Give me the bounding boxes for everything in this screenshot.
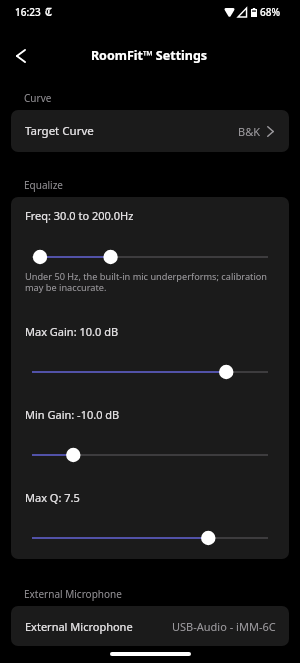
- staticText: USB-Audio - iMM-6C: [172, 619, 276, 634]
- staticText: External Microphone: [24, 587, 122, 601]
- staticText: External Microphone: [25, 619, 133, 634]
- staticText: Under 50 Hz, the built-in mic underperfo…: [25, 270, 277, 294]
- staticText: Min Gain: -10.0 dB: [25, 407, 120, 422]
- button[interactable]: External Microphone: [11, 606, 289, 646]
- button[interactable]: Slider: [11, 363, 289, 381]
- staticText: 𝔗: [45, 3, 53, 21]
- staticText: 68%: [260, 5, 280, 19]
- button[interactable]: Slider: [11, 446, 289, 464]
- staticText: 16:23: [15, 5, 41, 19]
- staticText: B&K: [238, 124, 261, 139]
- staticText: Equalize: [24, 178, 63, 192]
- staticText: Freq: 30.0 to 200.0Hz: [25, 208, 134, 223]
- staticText: Curve: [24, 91, 52, 105]
- button[interactable]: Back: [2, 38, 38, 74]
- button[interactable]: Target Curve: [11, 110, 289, 152]
- button[interactable]: Slider: [11, 248, 289, 266]
- staticText: Max Gain: 10.0 dB: [25, 324, 119, 339]
- staticText: Max Q: 7.5: [25, 490, 80, 505]
- staticText: RoomFit™ Settings: [0, 47, 299, 64]
- button[interactable]: Slider: [11, 529, 289, 547]
- staticText: Target Curve: [25, 123, 94, 139]
